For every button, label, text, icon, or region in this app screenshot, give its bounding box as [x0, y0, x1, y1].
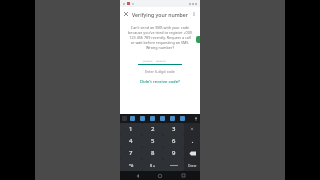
- button[interactable]: Suggestion: [170, 116, 175, 121]
- staticText: Didn't receive code?: [140, 79, 180, 85]
- staticText: 6: [172, 137, 176, 145]
- button[interactable]: Suggestion: [140, 116, 145, 121]
- staticText: Can't send an SMS with your code because…: [127, 25, 193, 50]
- button[interactable]: Suggestion: [160, 116, 165, 121]
- button[interactable]: 2: [142, 123, 163, 135]
- staticText: Verifying your number: [132, 11, 188, 18]
- button[interactable]: [163, 159, 184, 171]
- button[interactable]: 5: [142, 135, 163, 147]
- button[interactable]: Didn't receive code?: [120, 79, 200, 85]
- button[interactable]: Home: [155, 171, 165, 180]
- staticText: Done: [188, 163, 197, 168]
- button[interactable]: Recents: [178, 171, 188, 180]
- staticText: 9: [172, 149, 176, 157]
- button[interactable]: Suggestion: [130, 116, 135, 121]
- button[interactable]: 9: [163, 147, 184, 159]
- button[interactable]: Suggestion: [180, 116, 185, 121]
- button[interactable]: 6: [163, 135, 184, 147]
- staticText: 4: [129, 137, 133, 145]
- staticText: *#: [129, 163, 134, 168]
- staticText: 5: [151, 137, 155, 145]
- button[interactable]: .: [184, 135, 200, 147]
- button[interactable]: 0 +: [142, 159, 163, 171]
- button[interactable]: 1: [120, 123, 142, 135]
- button[interactable]: Voice input: [193, 115, 198, 122]
- button[interactable]: 3: [163, 123, 184, 135]
- button[interactable]: 7: [120, 147, 142, 159]
- button[interactable]: Enter 6-digit code: [120, 69, 200, 74]
- staticText: 7: [129, 149, 133, 157]
- button[interactable]: Action: [196, 36, 200, 43]
- button[interactable]: Close: [120, 8, 132, 20]
- button[interactable]: 8: [142, 147, 163, 159]
- button[interactable]: done: [184, 159, 200, 171]
- staticText: 8: [151, 149, 155, 157]
- button[interactable]: More options: [188, 8, 200, 20]
- button[interactable]: x: [184, 123, 200, 135]
- staticText: 0 +: [150, 163, 156, 168]
- button[interactable]: del: [184, 147, 200, 159]
- staticText: 1: [129, 125, 133, 133]
- button[interactable]: *#: [120, 159, 142, 171]
- button[interactable]: [138, 57, 182, 65]
- staticText: 3: [172, 125, 176, 133]
- button[interactable]: Back: [133, 171, 143, 180]
- button[interactable]: Suggestion: [150, 116, 155, 121]
- button[interactable]: 4: [120, 135, 142, 147]
- staticText: 2: [151, 125, 155, 133]
- staticText: Enter 6-digit code: [145, 69, 175, 74]
